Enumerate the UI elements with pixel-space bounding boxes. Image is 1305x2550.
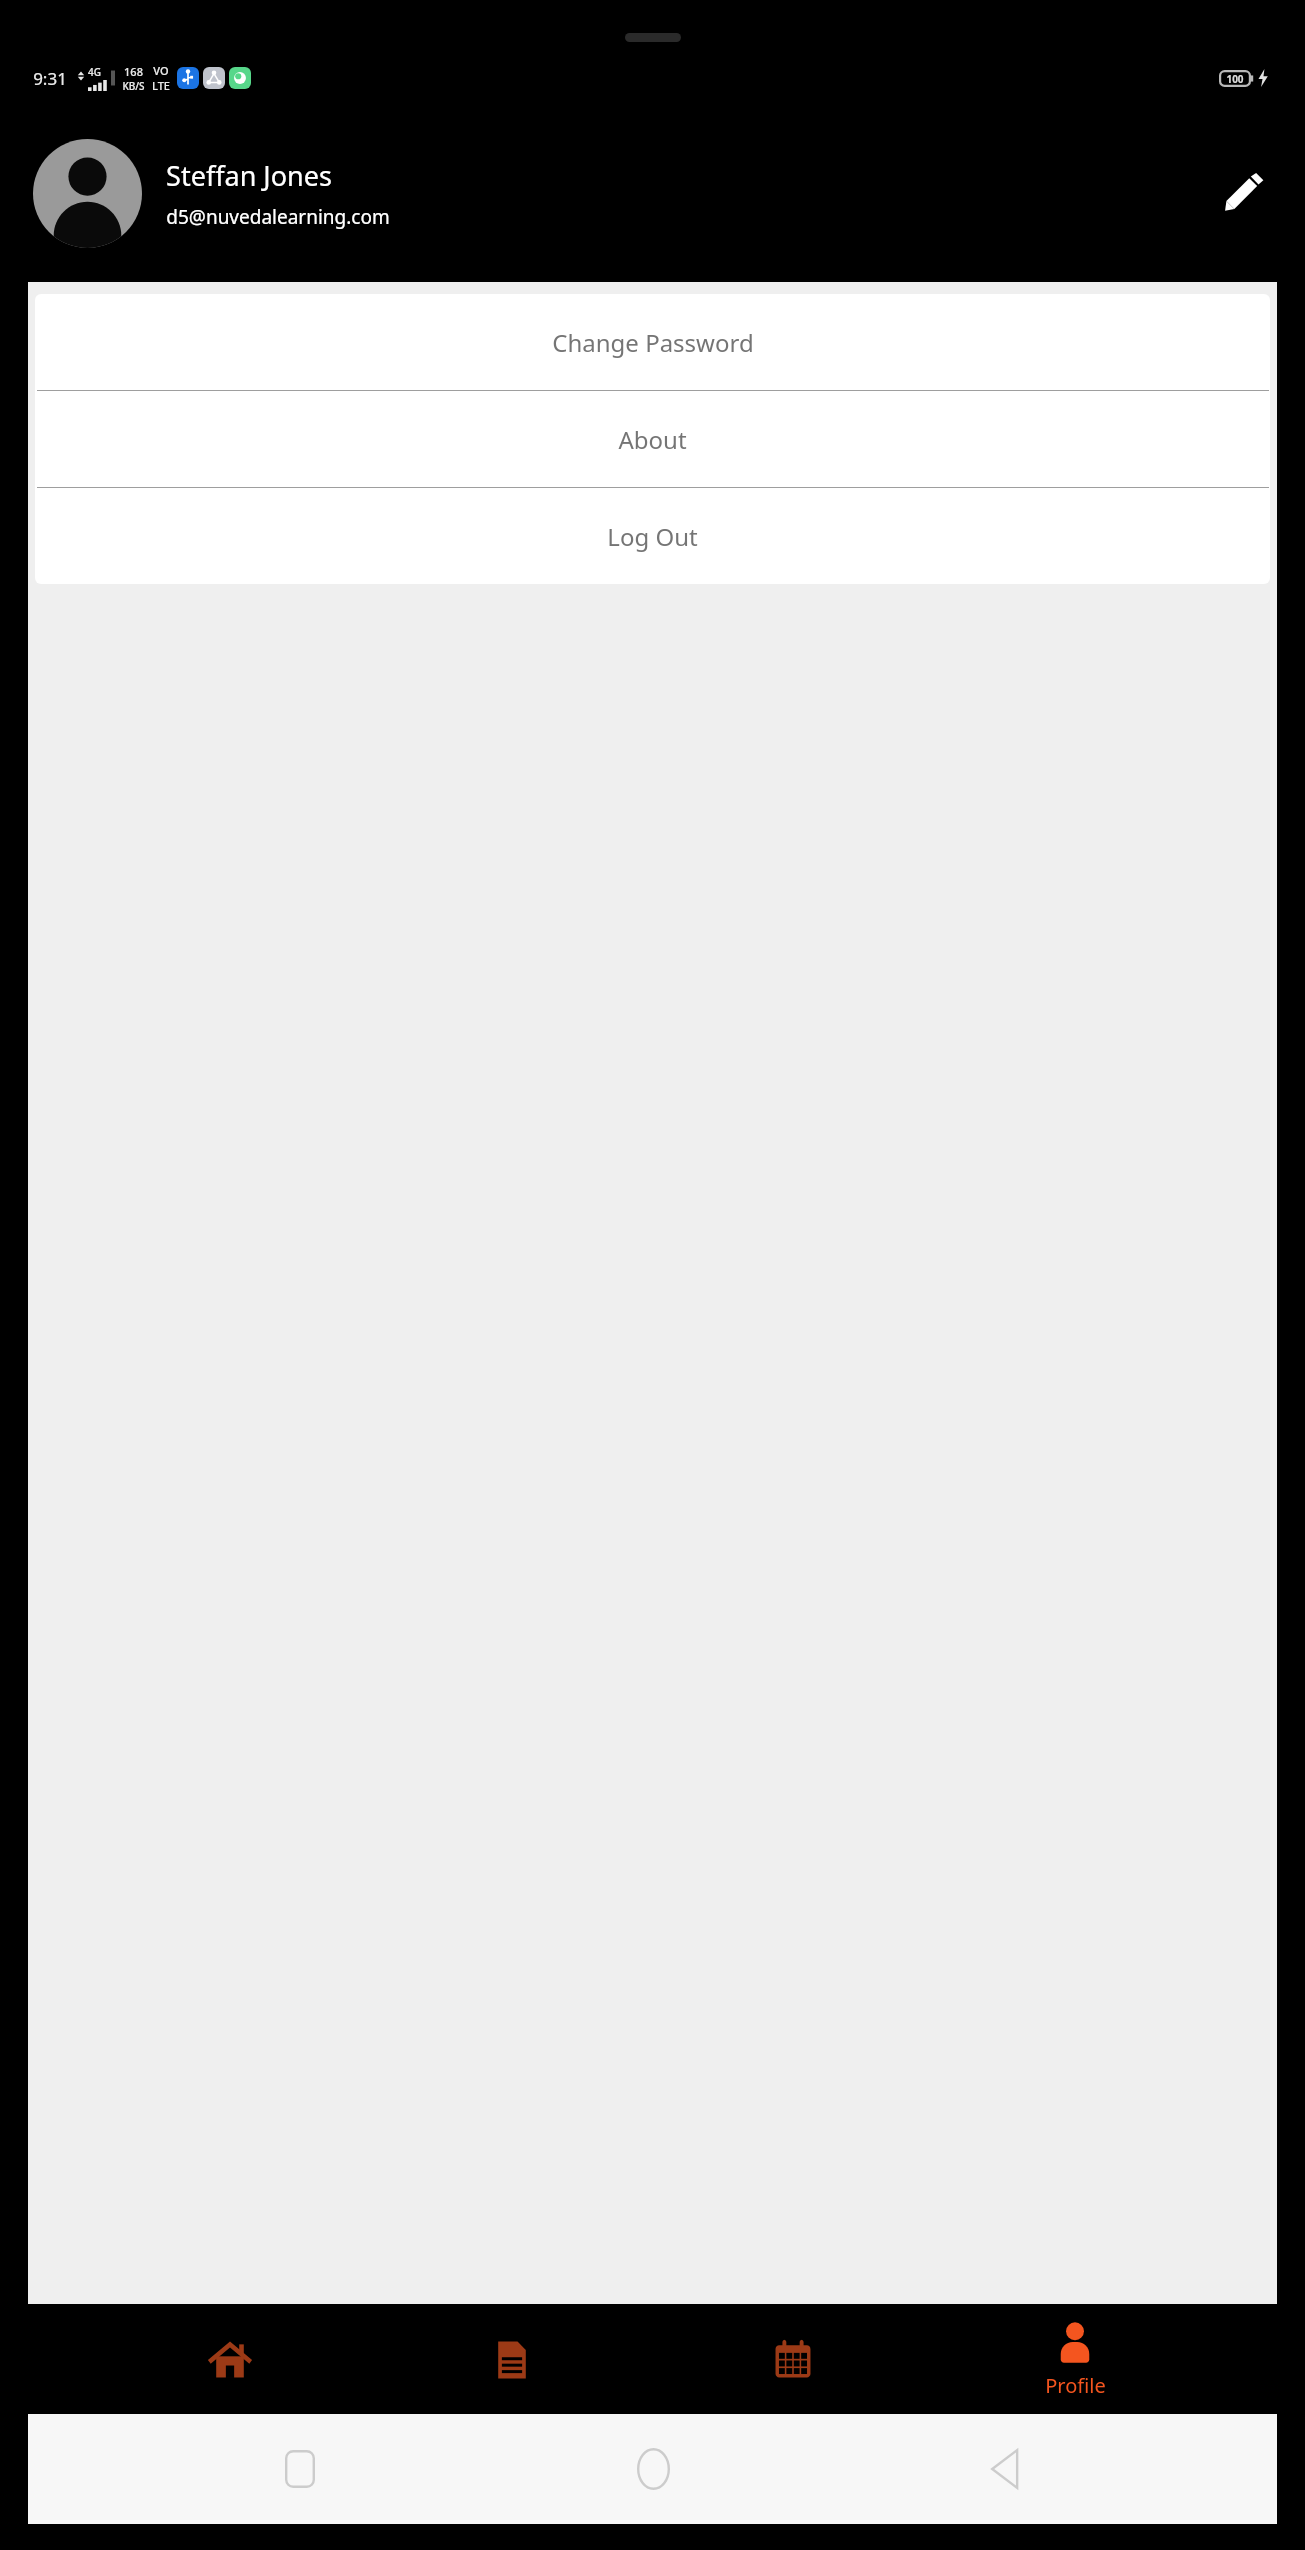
staticText: KB/S — [122, 79, 145, 93]
staticText: d5@nuvedalearning.com — [166, 204, 390, 230]
button[interactable]: Profile — [995, 2304, 1155, 2414]
staticText: LTE — [152, 78, 170, 93]
button[interactable]: Home — [573, 2414, 733, 2524]
staticText: Log Out — [607, 520, 698, 553]
button[interactable]: About — [35, 391, 1270, 487]
staticText: Steffan Jones — [166, 157, 332, 194]
staticText: Profile — [1045, 2372, 1106, 2399]
button[interactable]: Home — [150, 2304, 310, 2414]
button[interactable]: Profile photo — [33, 139, 142, 248]
button[interactable]: Edit profile — [1213, 163, 1275, 225]
button[interactable]: Back — [925, 2414, 1085, 2524]
staticText: VO — [153, 63, 169, 78]
button[interactable]: Change Password — [35, 294, 1270, 390]
button[interactable]: Recent apps — [220, 2414, 380, 2524]
staticText: Change Password — [552, 326, 754, 359]
staticText: About — [618, 423, 687, 456]
staticText: 100 — [1226, 72, 1244, 86]
staticText: 4G — [88, 65, 101, 79]
button[interactable]: Calendar — [713, 2304, 873, 2414]
staticText: 168 — [124, 64, 143, 79]
button[interactable]: Documents — [432, 2304, 592, 2414]
staticText: 9:31 — [33, 67, 67, 90]
button[interactable]: Log Out — [35, 488, 1270, 584]
